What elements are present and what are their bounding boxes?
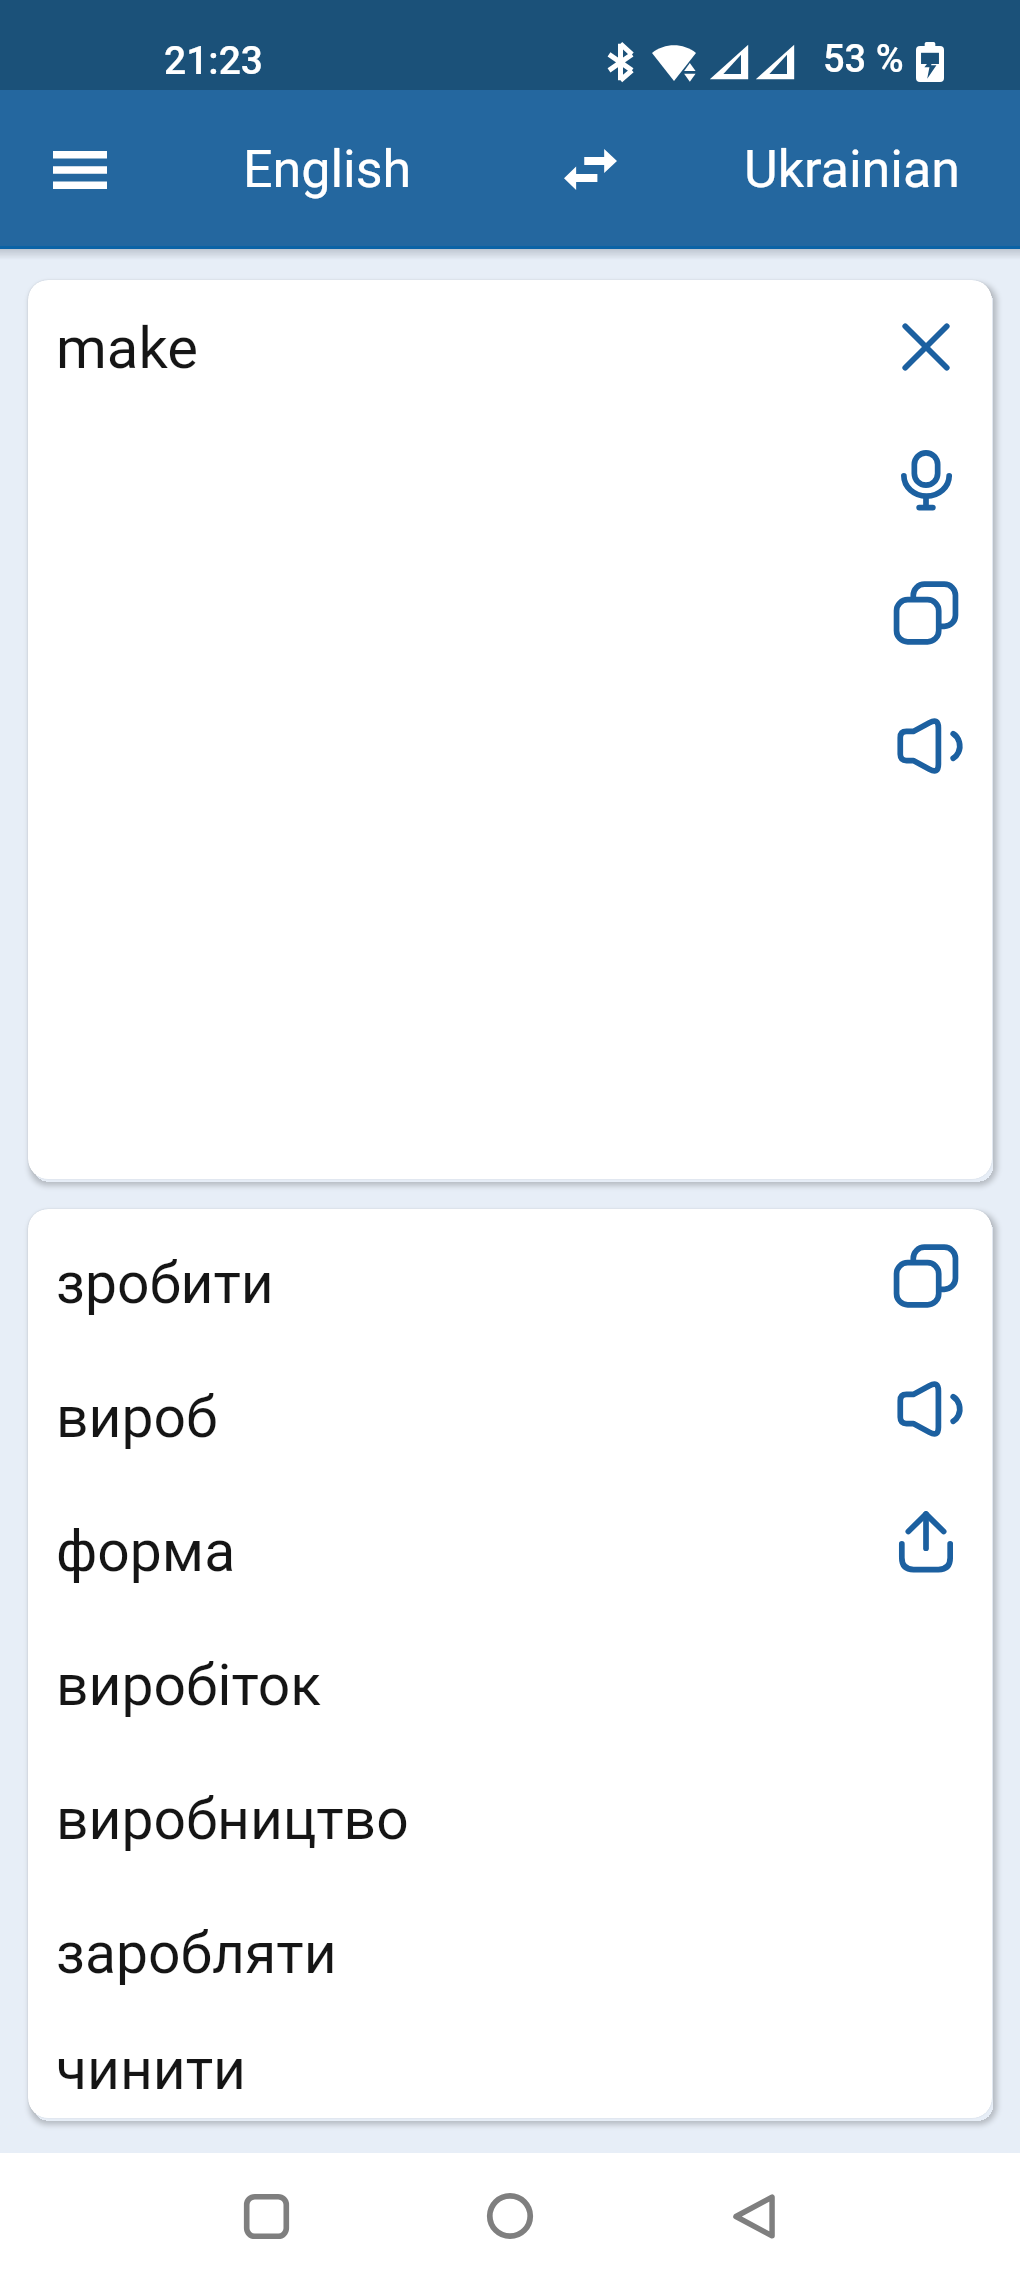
button[interactable]: заробляти: [28, 1886, 992, 2020]
button[interactable]: форма: [28, 1484, 992, 1618]
staticText: заробляти: [56, 1920, 337, 1987]
button[interactable]: виробіток: [28, 1618, 992, 1752]
button[interactable]: виробництво: [28, 1752, 992, 1886]
button[interactable]: Home: [449, 2155, 571, 2277]
button[interactable]: вироб: [28, 1350, 992, 1484]
staticText: 21:23: [164, 38, 264, 84]
button[interactable]: Copy: [859, 1209, 992, 1342]
button[interactable]: Listen: [859, 1342, 992, 1475]
button[interactable]: Share: [859, 1475, 992, 1608]
button[interactable]: English: [160, 90, 495, 249]
button[interactable]: Recents: [205, 2155, 327, 2277]
staticText: зробити: [56, 1250, 274, 1317]
staticText: Ukrainian: [744, 139, 960, 200]
button[interactable]: Voice input: [859, 413, 992, 546]
staticText: виробництво: [56, 1786, 409, 1853]
button[interactable]: Ukrainian: [684, 90, 1020, 249]
button[interactable]: Menu: [0, 90, 160, 249]
button[interactable]: чинити: [28, 2020, 992, 2118]
staticText: вироб: [56, 1384, 218, 1451]
staticText: make: [56, 314, 198, 382]
staticText: чинити: [56, 2036, 246, 2103]
staticText: форма: [56, 1518, 236, 1585]
button[interactable]: Back: [693, 2155, 815, 2277]
staticText: English: [243, 139, 412, 200]
button[interactable]: Swap languages: [510, 90, 670, 249]
button[interactable]: зробити: [28, 1216, 992, 1350]
button[interactable]: Copy: [859, 546, 992, 679]
staticText: 53 %: [823, 37, 904, 82]
button[interactable]: Listen: [859, 679, 992, 812]
button[interactable]: Clear: [859, 280, 992, 413]
staticText: виробіток: [56, 1652, 321, 1719]
